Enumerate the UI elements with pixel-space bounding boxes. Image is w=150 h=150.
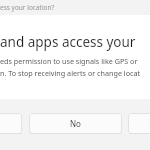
staticText: eds permission to use signals like GPS o…	[0, 56, 150, 66]
button[interactable]: No	[29, 113, 122, 134]
staticText: n. To stop receiving alerts or change lo…	[0, 68, 150, 78]
staticText: No	[70, 118, 81, 129]
staticText: and apps access your location	[0, 33, 150, 51]
staticText: ess your location?	[0, 3, 55, 12]
button[interactable]: Yes	[0, 113, 22, 134]
button[interactable]: More options	[128, 113, 150, 134]
